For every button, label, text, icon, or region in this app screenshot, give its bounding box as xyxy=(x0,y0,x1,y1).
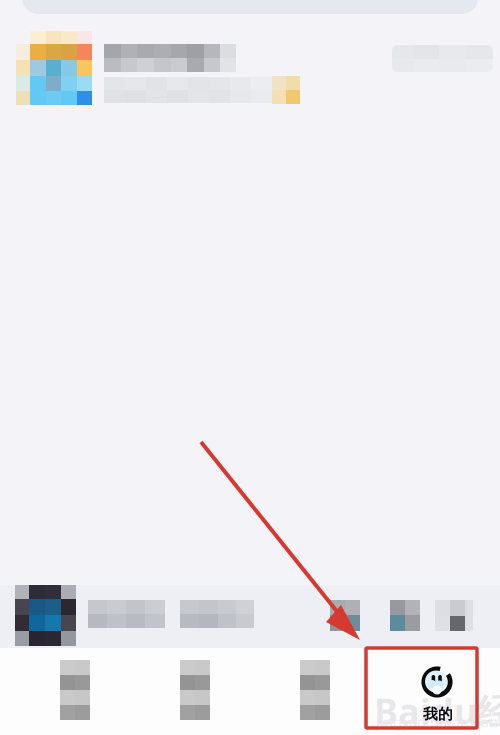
button[interactable]: 我的 xyxy=(393,665,483,723)
staticText: Baidu经验 xyxy=(374,687,500,735)
button[interactable]: Now playing xyxy=(0,585,500,648)
staticText: jingyan.baidu.com xyxy=(376,712,500,731)
button[interactable]: Tab 1 xyxy=(60,660,90,720)
button[interactable]: Tab 3 xyxy=(300,660,330,720)
button[interactable]: Tab 2 xyxy=(180,660,210,720)
staticText: 我的 xyxy=(423,705,453,723)
